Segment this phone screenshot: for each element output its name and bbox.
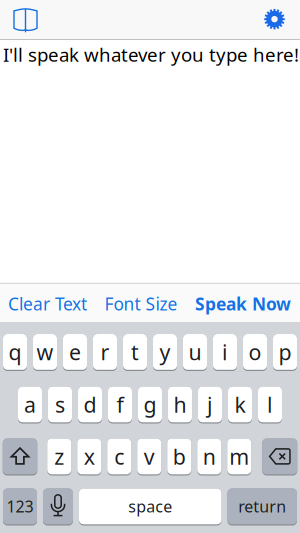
button[interactable]: q (3, 334, 27, 371)
button[interactable]: k (228, 386, 252, 423)
button[interactable]: w (33, 334, 57, 371)
button[interactable]: g (138, 386, 162, 423)
button[interactable]: o (243, 334, 267, 371)
button[interactable]: d (78, 386, 102, 423)
staticText: s (55, 390, 65, 418)
staticText: f (116, 390, 123, 418)
staticText: Speak Now (195, 292, 291, 315)
button[interactable]: z (47, 438, 71, 475)
staticText: I'll speak whatever you type here! (3, 42, 299, 67)
button[interactable]: space (79, 488, 221, 525)
button[interactable]: Shift (3, 438, 37, 475)
staticText: b (173, 442, 186, 470)
button[interactable]: Clear Text (8, 292, 87, 315)
button[interactable]: t (123, 334, 147, 371)
button[interactable]: Delete (262, 438, 297, 475)
button[interactable]: 123 (3, 488, 37, 525)
staticText: p (278, 338, 291, 366)
staticText: v (144, 442, 155, 470)
staticText: k (234, 390, 245, 418)
button[interactable]: a (18, 386, 42, 423)
staticText: x (84, 442, 95, 470)
staticText: q (8, 338, 21, 366)
staticText: j (207, 390, 213, 418)
staticText: return (238, 496, 286, 517)
button[interactable]: y (153, 334, 177, 371)
staticText: 123 (6, 496, 33, 517)
staticText: z (54, 442, 64, 470)
button[interactable]: h (168, 386, 192, 423)
button[interactable]: j (198, 386, 222, 423)
button[interactable]: i (213, 334, 237, 371)
staticText: y (159, 338, 170, 366)
button[interactable]: n (197, 438, 221, 475)
staticText: m (229, 442, 249, 470)
staticText: Font Size (104, 292, 177, 315)
staticText: i (222, 338, 228, 366)
staticText: l (267, 390, 273, 418)
button[interactable]: c (107, 438, 131, 475)
staticText: g (143, 390, 156, 418)
button[interactable]: Dictate (43, 488, 73, 525)
button[interactable]: r (93, 334, 117, 371)
staticText: d (83, 390, 96, 418)
button[interactable]: e (63, 334, 87, 371)
staticText: o (248, 338, 261, 366)
button[interactable]: Font Size (104, 292, 177, 315)
button[interactable]: v (137, 438, 161, 475)
staticText: h (173, 390, 186, 418)
button[interactable]: p (273, 334, 297, 371)
button[interactable]: l (258, 386, 282, 423)
button[interactable]: u (183, 334, 207, 371)
button[interactable]: b (167, 438, 191, 475)
staticText: r (100, 338, 109, 366)
staticText: e (69, 338, 81, 366)
staticText: space (128, 496, 172, 517)
button[interactable]: Settings (264, 9, 300, 31)
button[interactable]: s (48, 386, 72, 423)
staticText: a (24, 390, 36, 418)
button[interactable]: Saved phrases (0, 6, 38, 34)
button[interactable]: return (227, 488, 297, 525)
staticText: u (188, 338, 201, 366)
staticText: w (36, 338, 53, 366)
button[interactable]: f (108, 386, 132, 423)
button[interactable]: m (227, 438, 251, 475)
staticText: n (203, 442, 216, 470)
staticText: Clear Text (8, 292, 87, 315)
button[interactable]: x (77, 438, 101, 475)
staticText: c (114, 442, 124, 470)
button[interactable]: Speak Now (195, 292, 291, 315)
staticText: t (131, 338, 139, 366)
